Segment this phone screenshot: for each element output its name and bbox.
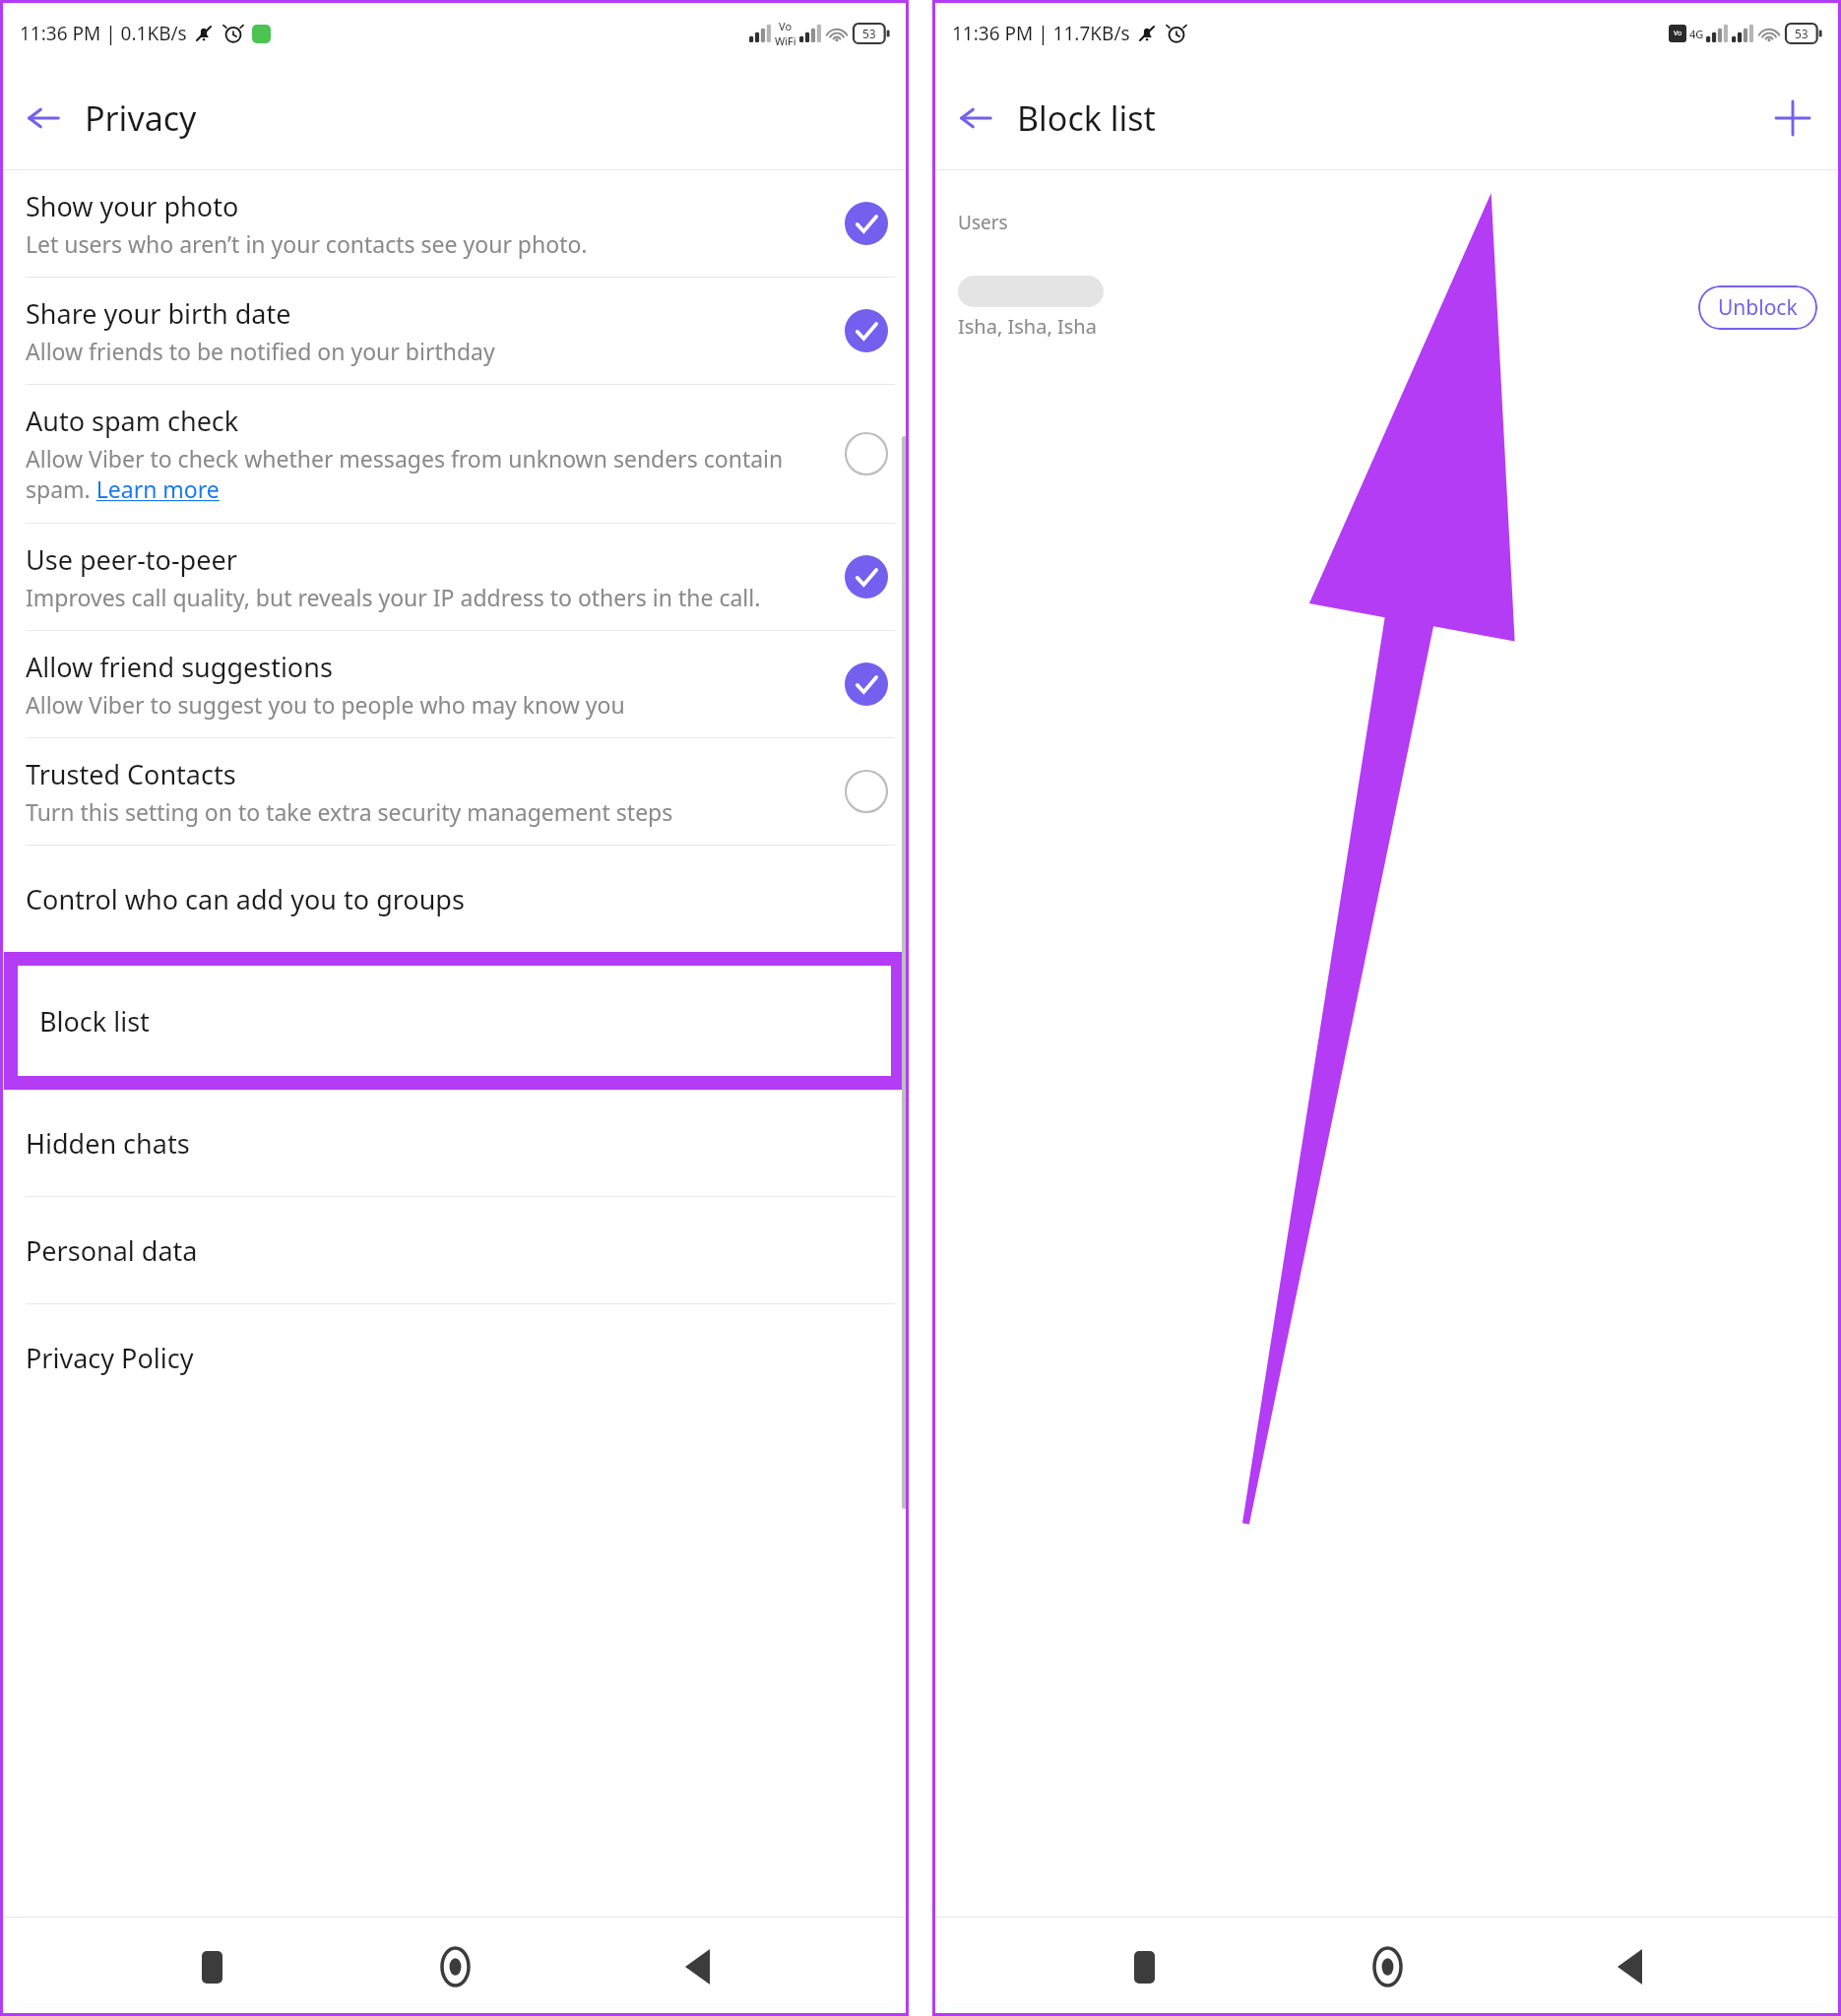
button[interactable]: Auto spam check <box>0 385 909 523</box>
staticText: Allow Viber to suggest you to people who… <box>26 689 625 720</box>
staticText: Users <box>958 210 1008 235</box>
staticText: 4G <box>1689 27 1704 41</box>
button[interactable]: Isha, Isha, Isha <box>932 263 1841 351</box>
staticText: Trusted Contacts <box>26 756 236 792</box>
button[interactable]: Privacy Policy <box>0 1304 909 1411</box>
button[interactable]: Allow friend suggestions <box>0 631 909 737</box>
staticText: Vo <box>779 19 793 33</box>
button[interactable]: Checked <box>842 306 891 355</box>
button[interactable]: Share your birth date <box>0 278 909 384</box>
staticText: Unblock <box>1718 293 1798 322</box>
staticText: 11:36 PM | 0.1KB/s <box>20 21 187 46</box>
staticText: Show your photo <box>26 188 239 224</box>
staticText: Block list <box>1017 95 1156 141</box>
button[interactable]: Add <box>1764 90 1821 147</box>
button[interactable]: Block list <box>18 966 891 1076</box>
staticText: Let users who aren’t in your contacts se… <box>26 228 588 259</box>
button[interactable]: Unchecked <box>842 429 891 478</box>
button[interactable]: Recent apps <box>1112 1935 1175 1998</box>
button[interactable]: Unblock <box>1698 285 1817 330</box>
staticText: Isha, Isha, Isha <box>958 313 1097 340</box>
staticText: Privacy <box>85 95 197 141</box>
staticText: 53 <box>862 26 876 41</box>
button[interactable]: Use peer-to-peer <box>0 524 909 630</box>
button[interactable]: Checked <box>842 199 891 248</box>
button[interactable]: Checked <box>842 660 891 709</box>
staticText: Privacy Policy <box>26 1340 194 1376</box>
staticText: Turn this setting on to take extra secur… <box>26 796 673 827</box>
button[interactable]: Unchecked <box>842 767 891 816</box>
button[interactable]: Control who can add you to groups <box>0 846 909 952</box>
button[interactable]: Trusted Contacts <box>0 738 909 845</box>
button[interactable]: Recent apps <box>180 1935 243 1998</box>
button[interactable]: Hidden chats <box>0 1090 909 1196</box>
staticText: Auto spam check <box>26 403 239 439</box>
staticText: Allow friend suggestions <box>26 649 333 685</box>
button[interactable]: Home <box>1356 1935 1419 1998</box>
staticText: Improves call quality, but reveals your … <box>26 582 761 612</box>
button[interactable]: Personal data <box>0 1197 909 1303</box>
staticText: 53 <box>1795 26 1809 41</box>
button[interactable]: Back <box>1598 1935 1661 1998</box>
button[interactable]: Show your photo <box>0 170 909 277</box>
staticText: Block list <box>39 1003 150 1039</box>
staticText: Personal data <box>26 1232 198 1269</box>
staticText: Hidden chats <box>26 1125 190 1162</box>
button[interactable]: Back <box>666 1935 729 1998</box>
staticText: Allow Viber to check whether messages fr… <box>26 443 826 505</box>
button[interactable]: Back <box>16 91 71 146</box>
staticText: Control who can add you to groups <box>26 881 465 917</box>
staticText: WiFi <box>775 33 796 48</box>
staticText: Allow friends to be notified on your bir… <box>26 336 495 366</box>
staticText: 11:36 PM | 11.7KB/s <box>952 21 1130 46</box>
button[interactable]: Home <box>423 1935 486 1998</box>
button[interactable]: Back <box>948 91 1003 146</box>
staticText: Share your birth date <box>26 295 291 332</box>
staticText: Use peer-to-peer <box>26 541 237 578</box>
staticText: Vo <box>1674 29 1682 38</box>
button[interactable]: Checked <box>842 552 891 601</box>
